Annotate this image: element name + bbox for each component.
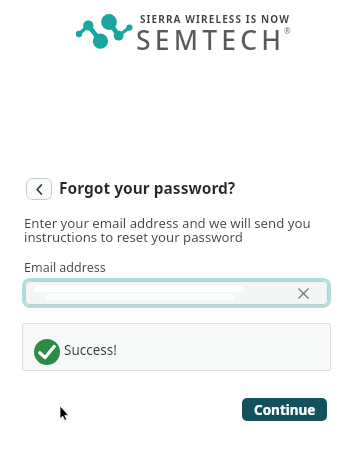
staticText: ®: [284, 25, 291, 36]
staticText: Email address: [24, 259, 106, 276]
staticText: SIERRA WIRELESS IS NOW: [140, 12, 290, 26]
staticText: Continue: [254, 401, 316, 419]
staticText: Forgot your password?: [59, 177, 236, 198]
staticText: Success!: [64, 341, 117, 359]
button[interactable]: [26, 178, 52, 200]
button[interactable]: [22, 278, 331, 308]
button[interactable]: Continue: [242, 398, 327, 421]
staticText: Enter your email address and we will sen…: [24, 214, 311, 246]
staticText: SEMTECH: [136, 22, 286, 58]
